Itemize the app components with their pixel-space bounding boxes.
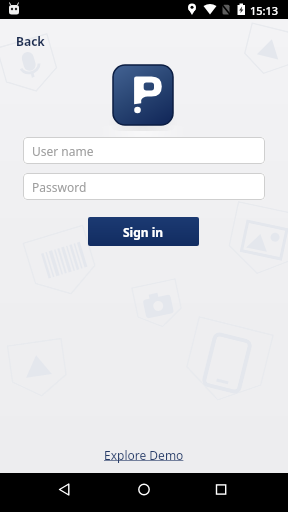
button[interactable]: User name	[23, 137, 265, 164]
button[interactable]: Explore Demo	[104, 447, 184, 463]
button[interactable]	[96, 473, 192, 512]
button[interactable]: Password	[23, 173, 265, 200]
button[interactable]: Sign in	[88, 217, 199, 246]
staticText: User name	[32, 143, 94, 159]
staticText: Password	[32, 179, 87, 195]
button[interactable]	[0, 473, 96, 512]
staticText: Sign in	[123, 224, 164, 240]
staticText: 15:13	[250, 3, 279, 18]
button[interactable]	[192, 473, 288, 512]
button[interactable]: Back	[16, 33, 45, 49]
